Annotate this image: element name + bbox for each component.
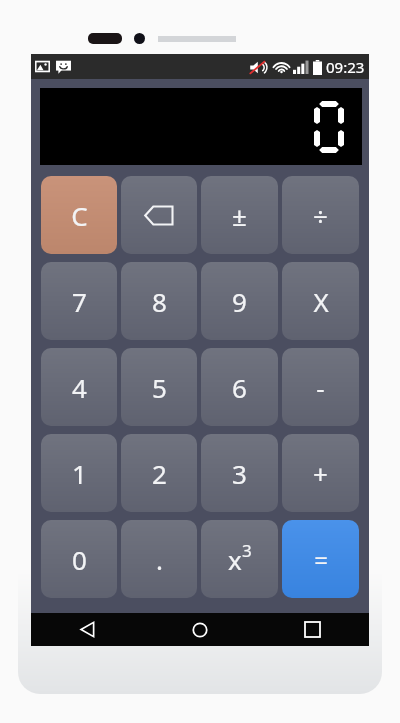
staticText: 8 [152,284,167,319]
staticText: 6 [232,370,247,405]
button[interactable]: . [121,520,197,598]
staticText: x [228,542,242,577]
staticText: C [71,198,88,233]
button[interactable]: x [201,520,278,598]
staticText: ± [232,198,247,233]
button[interactable]: 5 [121,348,197,426]
button[interactable]: 0 [41,520,117,598]
button[interactable]: ÷ [282,176,359,254]
button[interactable]: - [282,348,359,426]
staticText: 3 [242,539,252,562]
button[interactable]: 3 [201,434,278,512]
staticText: 2 [152,456,167,491]
staticText: + [313,456,328,491]
button[interactable]: = [282,520,359,598]
staticText: 5 [152,370,167,405]
staticText: 9 [232,284,247,319]
button[interactable]: 6 [201,348,278,426]
button[interactable]: 2 [121,434,197,512]
staticText: 1 [72,456,87,491]
button[interactable]: Back [31,613,143,646]
button[interactable]: 9 [201,262,278,340]
staticText: 09:23 [326,57,365,77]
staticText: 0 [72,542,87,577]
staticText: = [314,543,328,576]
button[interactable]: C [41,176,117,254]
staticText: 3 [232,456,247,491]
button[interactable]: 7 [41,262,117,340]
button[interactable]: X [282,262,359,340]
button[interactable]: 8 [121,262,197,340]
button[interactable]: Home [143,613,256,646]
button[interactable]: + [282,434,359,512]
staticText: ÷ [313,198,328,233]
button[interactable]: 4 [41,348,117,426]
staticText: X [313,284,329,319]
button[interactable]: Recent apps [256,613,369,646]
button[interactable]: Backspace [121,176,197,254]
staticText: . [156,542,163,577]
button[interactable]: ± [201,176,278,254]
staticText: 4 [72,370,87,405]
button[interactable]: 1 [41,434,117,512]
staticText: - [316,370,325,405]
staticText: 7 [72,284,87,319]
